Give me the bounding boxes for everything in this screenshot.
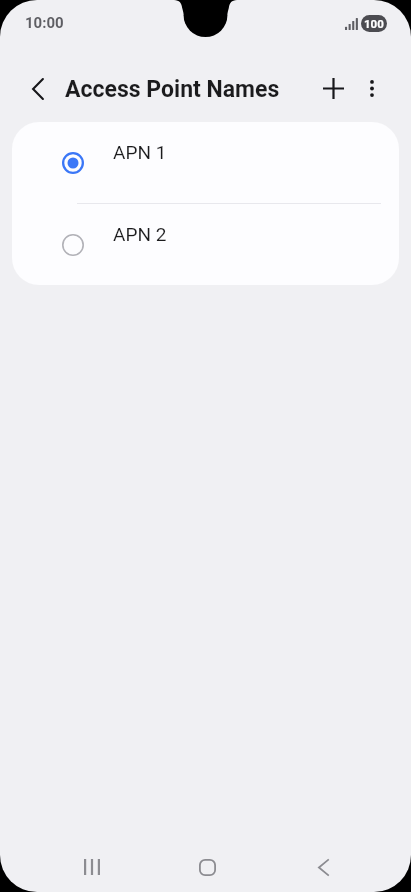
staticText: APN 2 xyxy=(113,223,167,245)
button[interactable]: Recents xyxy=(68,843,116,891)
button[interactable]: APN 1 xyxy=(12,122,399,203)
button[interactable]: Back xyxy=(14,65,62,113)
staticText: 100 xyxy=(364,17,384,30)
button[interactable]: Back xyxy=(299,843,347,891)
staticText: 10:00 xyxy=(25,14,64,32)
staticText: APN 1 xyxy=(113,141,167,163)
staticText: Access Point Names xyxy=(65,76,280,103)
button[interactable]: Home xyxy=(183,843,231,891)
button[interactable]: APN 2 xyxy=(12,204,399,285)
button[interactable]: Add xyxy=(309,64,357,112)
button[interactable]: More options xyxy=(348,64,396,112)
